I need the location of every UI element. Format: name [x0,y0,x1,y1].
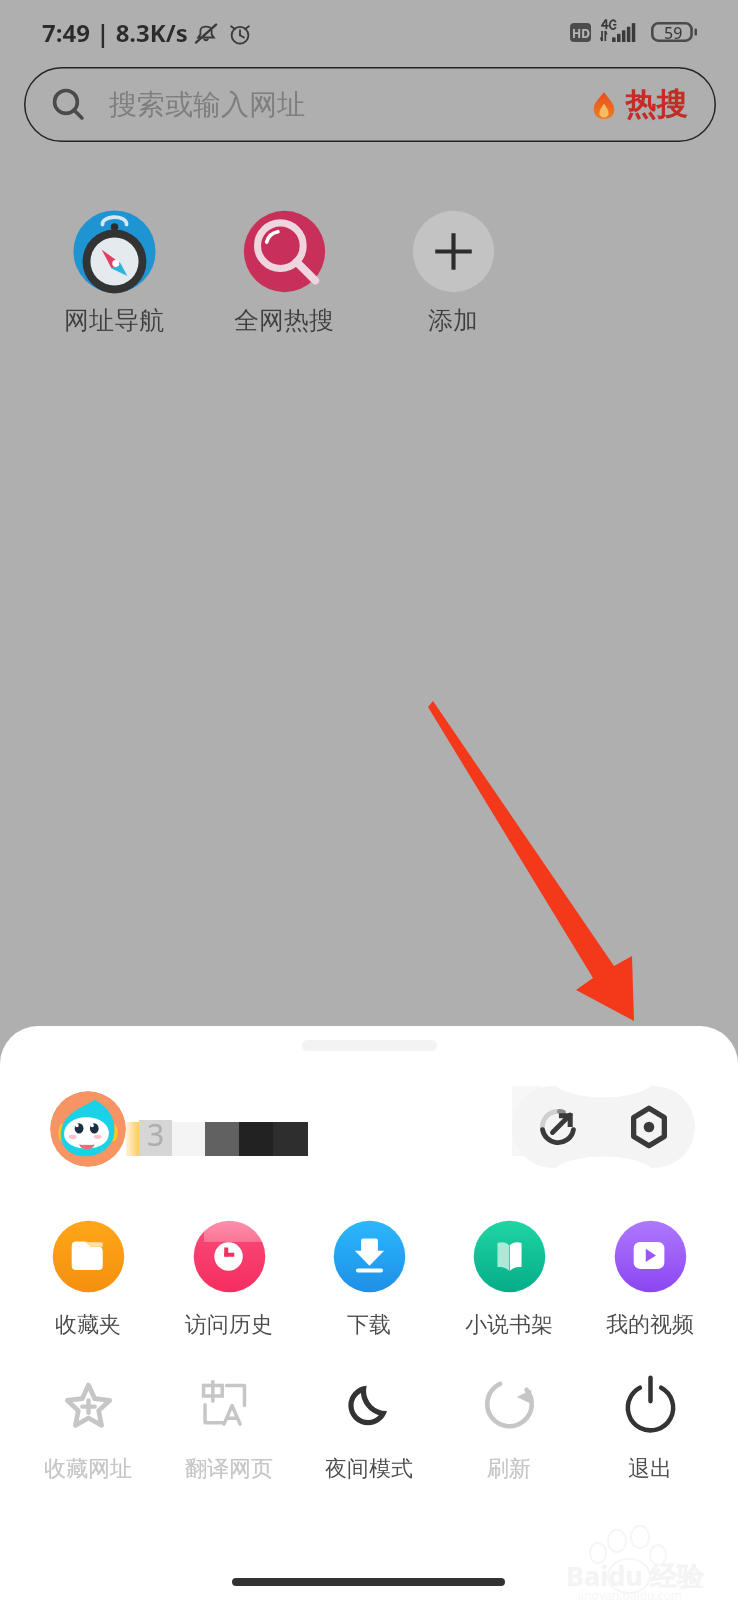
staticText: HD [572,25,590,41]
button[interactable]: 访问历史 [161,1220,297,1339]
button[interactable]: 夜间模式 [301,1369,437,1483]
button[interactable]: 翻译网页 [161,1369,297,1483]
staticText: 我的视频 [582,1311,718,1339]
staticText: 7:49 | 8.3K/s [42,16,188,49]
staticText: 3 [147,1114,165,1150]
staticText: jingyan.baidu.com [578,1587,682,1600]
staticText: 搜索或输入网址 [109,87,305,122]
button[interactable]: Settings [603,1086,695,1168]
staticText: 网址导航 [39,305,189,336]
button[interactable]: 收藏夹 [20,1220,156,1339]
staticText: 翻译网页 [161,1455,297,1483]
button[interactable]: 我的视频 [582,1220,718,1339]
staticText: 收藏夹 [20,1311,156,1339]
staticText: 夜间模式 [301,1455,437,1483]
button[interactable]: 退出 [582,1369,718,1483]
staticText: 小说书架 [441,1311,577,1339]
staticText: 收藏网址 [20,1455,156,1483]
button[interactable]: 刷新 [441,1369,577,1483]
staticText: 访问历史 [161,1311,297,1339]
staticText: 热搜 [625,85,687,124]
staticText: 下载 [301,1311,437,1339]
staticText: 刷新 [441,1455,577,1483]
button[interactable]: 下载 [301,1220,437,1339]
staticText: 退出 [582,1455,718,1483]
staticText: 59 [664,22,683,42]
button[interactable]: 网址导航 [39,210,189,336]
button[interactable]: 小说书架 [441,1220,577,1339]
button[interactable]: 收藏网址 [20,1369,156,1483]
button[interactable]: Share page [512,1086,603,1168]
staticText: Baidu 经验 [566,1557,704,1594]
button[interactable]: 全网热搜 [209,210,359,336]
button[interactable]: 搜索或输入网址 [24,67,716,142]
button[interactable] [50,1091,126,1167]
button[interactable]: 添加 [378,210,528,336]
staticText: 全网热搜 [209,305,359,336]
staticText: 添加 [378,305,528,336]
